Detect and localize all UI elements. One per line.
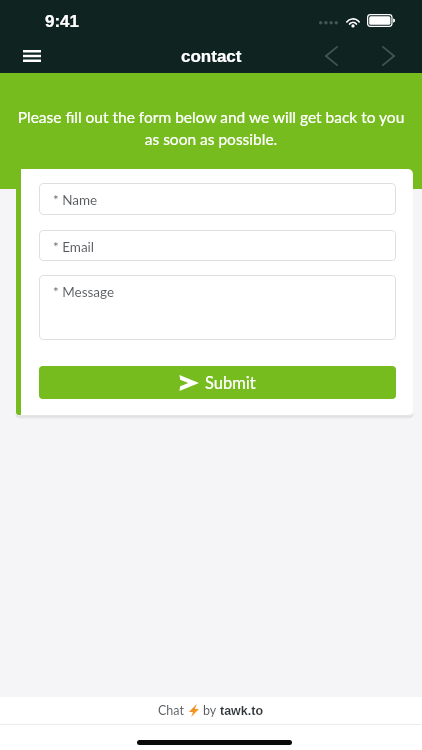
button[interactable]: Forward	[370, 39, 406, 73]
staticText: * Name	[53, 192, 98, 208]
staticText: tawk.to	[220, 704, 264, 718]
button[interactable]: Chat	[0, 697, 422, 724]
staticText: Chat	[158, 703, 184, 718]
staticText: Please fill out the form below and we wi…	[17, 108, 405, 148]
button[interactable]: Menu	[15, 39, 49, 73]
button[interactable]: * Name	[39, 183, 396, 215]
button[interactable]: Submit	[39, 366, 396, 399]
staticText: contact	[181, 47, 242, 66]
staticText: * Email	[53, 239, 95, 255]
staticText: by	[203, 703, 220, 718]
staticText: 9:41	[45, 12, 80, 31]
staticText: Submit	[205, 373, 256, 393]
button[interactable]: * Email	[39, 230, 396, 261]
button[interactable]: * Message	[39, 275, 396, 340]
staticText: * Message	[53, 284, 115, 300]
button[interactable]: Back	[313, 39, 349, 73]
